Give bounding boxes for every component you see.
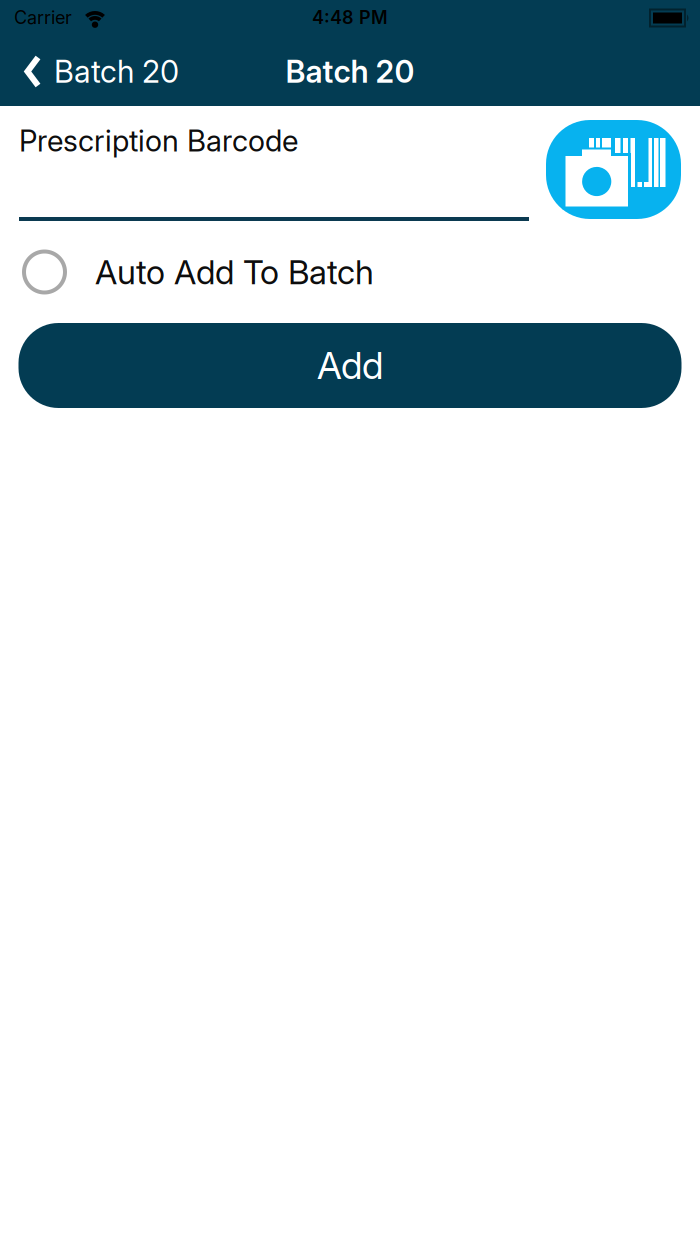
staticText: Auto Add To Batch	[95, 252, 374, 292]
button[interactable]: Back	[0, 53, 179, 90]
button[interactable]: Auto Add To Batch	[0, 251, 374, 292]
staticText: Carrier	[14, 7, 72, 28]
button[interactable]: Add	[18, 323, 681, 408]
staticText: Add	[317, 343, 383, 388]
staticText: Prescription Barcode	[19, 123, 298, 158]
staticText: Batch 20	[54, 53, 179, 90]
staticText: 4:48 PM	[312, 7, 388, 28]
staticText: Batch 20	[285, 53, 414, 90]
button[interactable]: Scan barcode with camera	[546, 120, 681, 219]
